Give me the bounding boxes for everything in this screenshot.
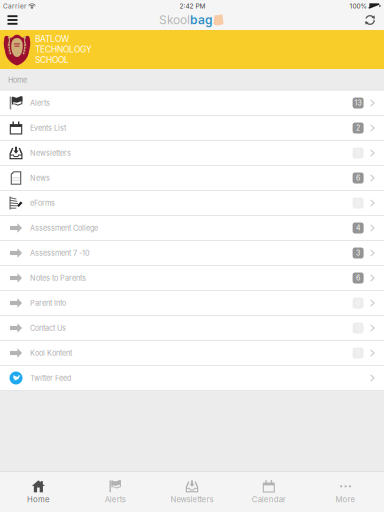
staticText: BATLOW (35, 34, 69, 44)
button[interactable]: Kool Kontent (0, 341, 384, 366)
staticText: 6 (356, 174, 360, 182)
staticText: 2:42 PM (179, 2, 205, 10)
staticText: eForms (30, 199, 55, 207)
staticText: Parent Info (30, 299, 66, 307)
staticText: Assessment 7 -10 (30, 249, 90, 257)
staticText: Events List (30, 124, 66, 132)
button[interactable]: Events List (0, 116, 384, 141)
staticText: Home (27, 495, 50, 504)
button[interactable]: Contact Us (0, 316, 384, 341)
staticText: 3 (356, 249, 360, 257)
button[interactable]: Alerts (0, 91, 384, 116)
staticText: Home (8, 76, 27, 84)
staticText: Twitter Feed (30, 374, 71, 382)
staticText: News (30, 174, 50, 182)
staticText: TECHNOLOGY (35, 44, 92, 55)
staticText: bag (190, 13, 213, 27)
staticText: Assessment College (30, 224, 98, 232)
staticText: 13 (355, 99, 362, 107)
button[interactable]: Refresh (357, 12, 384, 28)
button[interactable]: More (307, 480, 384, 504)
button[interactable]: News (0, 166, 384, 191)
button[interactable]: Notes to Parents (0, 266, 384, 291)
button[interactable]: Newsletters (154, 480, 230, 504)
button[interactable]: Calendar (230, 480, 307, 504)
button[interactable]: Newsletters (0, 141, 384, 166)
button[interactable]: Parent Info (0, 291, 384, 316)
staticText: Contact Us (30, 324, 66, 332)
staticText: Carrier (3, 2, 26, 10)
staticText: Alerts (105, 495, 126, 504)
staticText: Kool Kontent (30, 349, 72, 357)
staticText: More (336, 495, 356, 504)
button[interactable]: Twitter Feed (0, 366, 384, 391)
staticText: Skool (159, 13, 190, 27)
staticText: 2 (356, 124, 360, 132)
button[interactable]: eForms (0, 191, 384, 216)
button[interactable]: Assessment 7 -10 (0, 241, 384, 266)
staticText: SCHOOL (35, 55, 69, 65)
staticText: 4 (356, 224, 360, 232)
staticText: 6 (356, 274, 360, 282)
staticText: Notes to Parents (30, 274, 86, 282)
staticText: 100% (349, 2, 366, 10)
staticText: Newsletters (30, 149, 71, 157)
button[interactable]: Menu (0, 11, 25, 29)
staticText: Calendar (252, 495, 286, 504)
button[interactable]: Alerts (77, 480, 154, 504)
staticText: Alerts (30, 99, 50, 107)
button[interactable]: Home (0, 480, 77, 504)
button[interactable]: Assessment College (0, 216, 384, 241)
staticText: Newsletters (170, 495, 213, 504)
